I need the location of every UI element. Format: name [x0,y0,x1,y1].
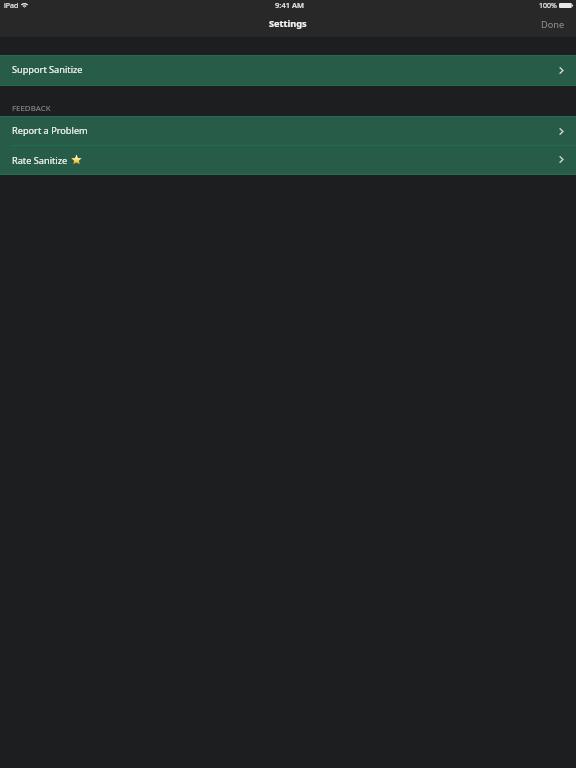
other: Battery full [559,3,573,8]
button[interactable]: Report a Problem [0,117,576,145]
staticText: Settings [269,17,307,30]
staticText: Rate Sanitize [12,154,68,167]
staticText: Support Sanitize [12,63,83,76]
staticText: iPad [4,1,19,11]
staticText: Done [541,18,565,31]
button[interactable]: Done [530,15,576,34]
button[interactable]: Rate Sanitize [0,145,576,174]
staticText: 9:41 AM [275,0,305,10]
staticText: 100% [539,1,557,11]
staticText: Report a Problem [12,124,88,137]
other: Wi-Fi [21,3,28,8]
staticText: FEEDBACK [12,103,51,114]
button[interactable]: Support Sanitize [0,56,576,85]
